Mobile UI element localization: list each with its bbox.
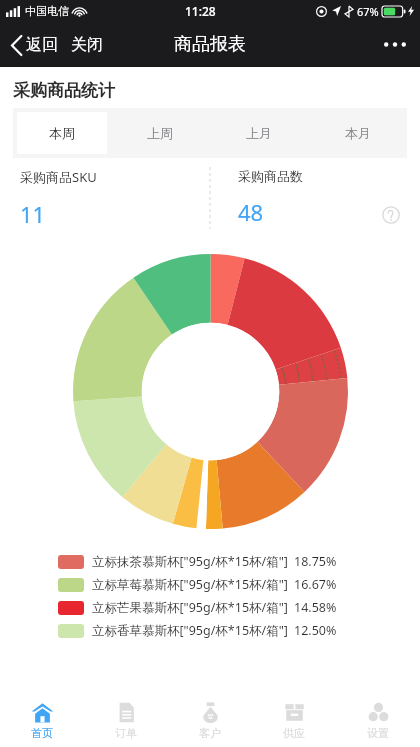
button[interactable]: 本周 [17,112,107,154]
staticText: 立标草莓慕斯杯["95g/杯*15杯/箱"] [92,576,288,593]
staticText: 采购商品统计 [13,80,115,101]
staticText: 订单 [115,726,137,740]
staticText: 立标抹茶慕斯杯["95g/杯*15杯/箱"] [92,553,288,570]
button[interactable]: 立标抹茶慕斯杯["95g/杯*15杯/箱"] [58,550,420,573]
staticText: 中国电信 [25,4,69,18]
staticText: 商品报表 [174,33,246,56]
staticText: 11:28 [185,3,216,19]
button[interactable]: 供应 [252,694,336,747]
staticText: 立标香草慕斯杯["95g/杯*15杯/箱"] [92,622,288,639]
staticText: 上周 [147,125,173,141]
staticText: 16.67% [294,576,337,593]
staticText: 客户 [199,726,221,740]
button[interactable]: 关闭 [69,31,105,59]
button[interactable]: 设置 [336,694,420,747]
button[interactable]: Help [382,206,400,224]
button[interactable]: 立标芒果慕斯杯["95g/杯*15杯/箱"] [58,596,420,619]
staticText: 立标芒果慕斯杯["95g/杯*15杯/箱"] [92,599,288,616]
staticText: 48 [238,197,264,227]
staticText: 14.58% [294,599,337,616]
staticText: 67% [357,4,379,19]
staticText: 本月 [345,125,371,141]
staticText: 设置 [367,726,389,740]
staticText: 关闭 [71,35,103,55]
staticText: 首页 [31,726,53,740]
staticText: 11 [20,199,46,229]
button[interactable]: 首页 [0,694,84,747]
button[interactable]: 上周 [115,112,205,154]
staticText: 18.75% [294,553,337,570]
staticText: 采购商品数 [238,168,303,184]
button[interactable]: 返回 [10,31,60,59]
staticText: 采购商品SKU [20,168,97,186]
staticText: 供应 [283,726,305,740]
staticText: 12.50% [294,622,337,639]
button[interactable]: 立标草莓慕斯杯["95g/杯*15杯/箱"] [58,573,420,596]
button[interactable]: 本月 [312,112,403,154]
button[interactable]: 上月 [213,112,304,154]
staticText: 本周 [49,125,75,141]
button[interactable]: 客户 [168,694,252,747]
button[interactable]: 立标香草慕斯杯["95g/杯*15杯/箱"] [58,619,420,642]
button[interactable]: 订单 [84,694,168,747]
staticText: 上月 [246,125,272,141]
staticText: 返回 [26,35,58,55]
button[interactable]: More options [370,30,420,59]
